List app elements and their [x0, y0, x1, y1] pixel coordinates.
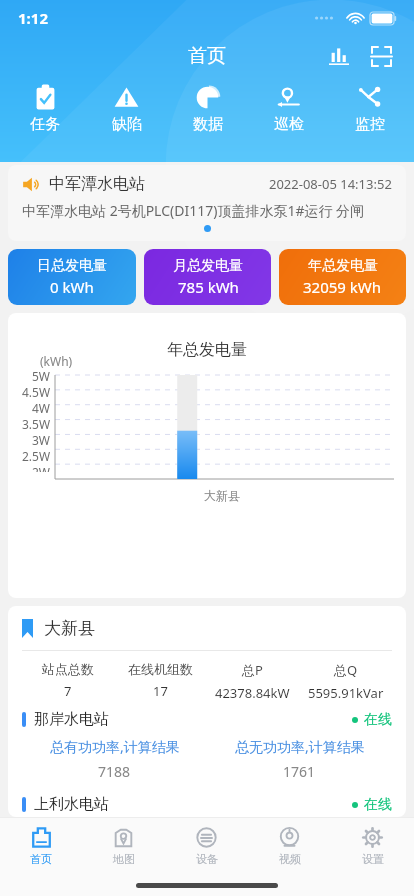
staticText: 3.5W — [22, 416, 51, 432]
staticText: 设备 — [196, 852, 218, 866]
staticText: 在线机组数 — [128, 661, 193, 677]
staticText: 总无功功率,计算结果 — [235, 737, 365, 756]
staticText: 中军潭水电站 2号机PLC(DI117)顶盖排水泵1#运行 分闸 — [22, 201, 365, 220]
staticText: 2022-08-05 14:13:52 — [269, 175, 392, 193]
staticText: 4W — [32, 400, 51, 416]
staticText: 3W — [32, 432, 51, 448]
staticText: 月总发电量 — [173, 257, 243, 275]
button[interactable]: Statistics — [322, 39, 356, 73]
staticText: 在线 — [364, 711, 392, 729]
button[interactable]: 数据 — [167, 82, 248, 136]
staticText: 那岸水电站 — [34, 710, 109, 729]
staticText: 首页 — [30, 852, 52, 866]
staticText: 数据 — [193, 115, 223, 134]
staticText: 大新县 — [204, 488, 240, 503]
staticText: 2W — [32, 464, 51, 472]
button[interactable]: 任务 — [4, 82, 86, 136]
staticText: 设置 — [362, 852, 384, 866]
button[interactable]: 缺陷 — [86, 82, 167, 136]
staticText: 2.5W — [22, 448, 51, 464]
staticText: 42378.84kW — [215, 684, 290, 702]
staticText: 年总发电量 — [308, 257, 378, 275]
button[interactable]: 那岸水电站 — [22, 710, 392, 729]
staticText: 在线 — [364, 796, 392, 814]
button[interactable]: 中军潭水电站 — [8, 165, 406, 241]
button[interactable]: 视频 — [248, 818, 331, 874]
staticText: 7 — [64, 682, 72, 700]
staticText: 日总发电量 — [37, 257, 107, 275]
staticText: 上利水电站 — [34, 795, 109, 814]
button[interactable]: 月总发电量 — [144, 249, 271, 305]
staticText: (kWh) — [40, 353, 73, 369]
button[interactable]: 年总发电量 — [279, 249, 406, 305]
staticText: 17 — [153, 682, 168, 700]
button[interactable]: 日总发电量 — [8, 249, 136, 305]
button[interactable]: 巡检 — [248, 82, 329, 136]
staticText: 4.5W — [22, 384, 51, 400]
staticText: 总有功功率,计算结果 — [50, 737, 180, 756]
staticText: 任务 — [30, 115, 60, 134]
staticText: 1:12 — [18, 8, 48, 28]
staticText: 中军潭水电站 — [49, 174, 145, 194]
staticText: 大新县 — [44, 618, 95, 639]
staticText: 1761 — [283, 762, 316, 781]
button[interactable]: 首页 — [0, 818, 82, 874]
staticText: 32059 kWh — [303, 277, 382, 297]
staticText: 0 kWh — [50, 277, 94, 297]
staticText: 总Q — [334, 661, 358, 679]
staticText: 视频 — [279, 852, 301, 866]
staticText: 地图 — [113, 852, 135, 866]
staticText: 7188 — [98, 762, 131, 781]
button[interactable]: 上利水电站 — [22, 795, 392, 814]
button[interactable]: 设备 — [165, 818, 248, 874]
staticText: 5595.91kVar — [308, 684, 384, 702]
staticText: 首页 — [188, 44, 226, 68]
staticText: 年总发电量 — [167, 340, 247, 360]
button[interactable]: Scan — [364, 39, 398, 73]
staticText: 巡检 — [274, 115, 304, 134]
button[interactable]: 设置 — [331, 818, 414, 874]
staticText: 785 kWh — [178, 277, 239, 297]
staticText: 监控 — [355, 115, 385, 134]
staticText: 站点总数 — [42, 661, 94, 677]
button[interactable]: 地图 — [82, 818, 165, 874]
staticText: 缺陷 — [112, 115, 142, 134]
staticText: 5W — [32, 368, 51, 384]
staticText: 总P — [242, 661, 263, 679]
button[interactable]: 监控 — [329, 82, 410, 136]
